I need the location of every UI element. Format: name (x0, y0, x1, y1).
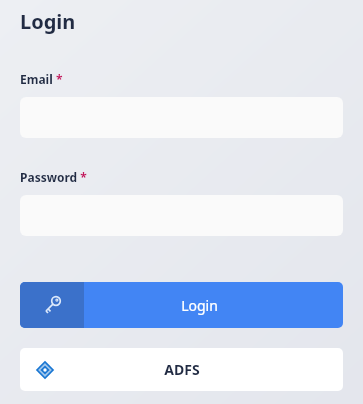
staticText: Login (20, 8, 76, 35)
staticText: ADFS (164, 360, 200, 379)
staticText: Login (181, 296, 218, 315)
other: Key (42, 295, 62, 315)
button[interactable]: Key (20, 282, 343, 328)
button[interactable]: ADFS (20, 348, 343, 391)
staticText: Email * (20, 71, 63, 87)
other: ADFS (35, 360, 55, 380)
staticText: Password * (20, 169, 87, 185)
